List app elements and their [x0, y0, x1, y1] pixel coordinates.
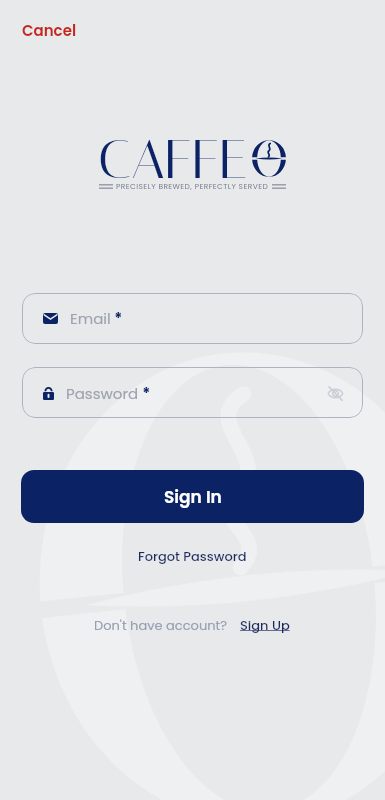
- staticText: *: [139, 383, 151, 404]
- staticText: Forgot Password: [138, 547, 247, 565]
- button[interactable]: Password: [22, 367, 363, 418]
- button[interactable]: Sign Up: [238, 616, 292, 634]
- staticText: PRECISELY BREWED, PERFECTLY SERVED: [116, 181, 269, 191]
- staticText: Don't have account?: [94, 616, 228, 634]
- staticText: Password: [66, 383, 139, 404]
- button[interactable]: Cancel: [14, 14, 85, 47]
- staticText: CAFFE: [98, 128, 248, 192]
- button[interactable]: Email: [22, 293, 363, 344]
- staticText: Email: [70, 308, 111, 329]
- staticText: *: [111, 308, 123, 329]
- button[interactable]: Sign In: [21, 470, 364, 523]
- button[interactable]: Show password: [313, 371, 357, 415]
- button[interactable]: Forgot Password: [130, 543, 255, 569]
- staticText: Cancel: [22, 20, 77, 41]
- staticText: Sign Up: [240, 616, 290, 634]
- staticText: Sign In: [164, 485, 222, 509]
